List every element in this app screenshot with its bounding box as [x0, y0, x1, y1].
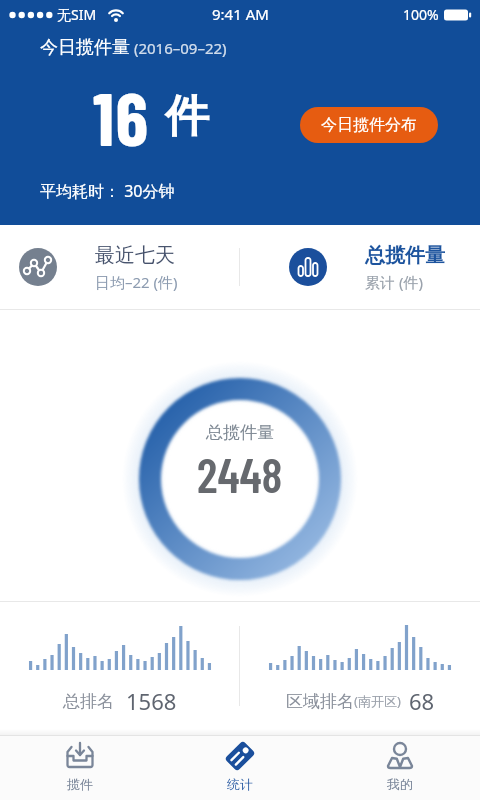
staticText: 100% — [403, 5, 439, 24]
staticText: 区域排名 — [286, 691, 354, 712]
staticText: 累计 (件) — [365, 272, 423, 292]
staticText: 68 — [409, 686, 435, 716]
staticText: 今日揽件分布 — [321, 115, 417, 135]
staticText: 统计 — [227, 776, 253, 792]
button[interactable]: 今日揽件分布 — [300, 107, 438, 143]
button[interactable]: 统计 — [160, 736, 320, 800]
button[interactable]: 最近七天 — [0, 225, 239, 309]
button[interactable]: 总揽件量 — [240, 225, 480, 309]
button[interactable]: 总排名 — [0, 602, 239, 729]
staticText: (2016–09–22) — [130, 38, 227, 58]
staticText: 日均–22 (件) — [95, 272, 178, 292]
staticText: 无SIM — [57, 5, 97, 24]
staticText: 我的 — [387, 776, 413, 792]
staticText: 平均耗时： 30分钟 — [40, 180, 175, 202]
button[interactable]: 我的 — [320, 736, 480, 800]
staticText: 16 — [93, 72, 150, 161]
staticText: 件 — [165, 89, 209, 144]
staticText: 总揽件量 — [365, 243, 445, 268]
staticText: 2448 — [197, 445, 283, 503]
staticText: 总揽件量 — [206, 422, 274, 443]
staticText: 最近七天 — [95, 243, 175, 268]
button[interactable]: 揽件 — [0, 736, 160, 800]
staticText: 9:41 AM — [212, 4, 269, 24]
staticText: 揽件 — [67, 776, 93, 792]
staticText: 总排名 — [63, 691, 114, 712]
staticText: 1568 — [126, 686, 177, 716]
staticText: 今日揽件量 — [40, 36, 130, 59]
button[interactable]: 区域排名 — [240, 602, 480, 729]
staticText: (南开区) — [354, 692, 401, 710]
